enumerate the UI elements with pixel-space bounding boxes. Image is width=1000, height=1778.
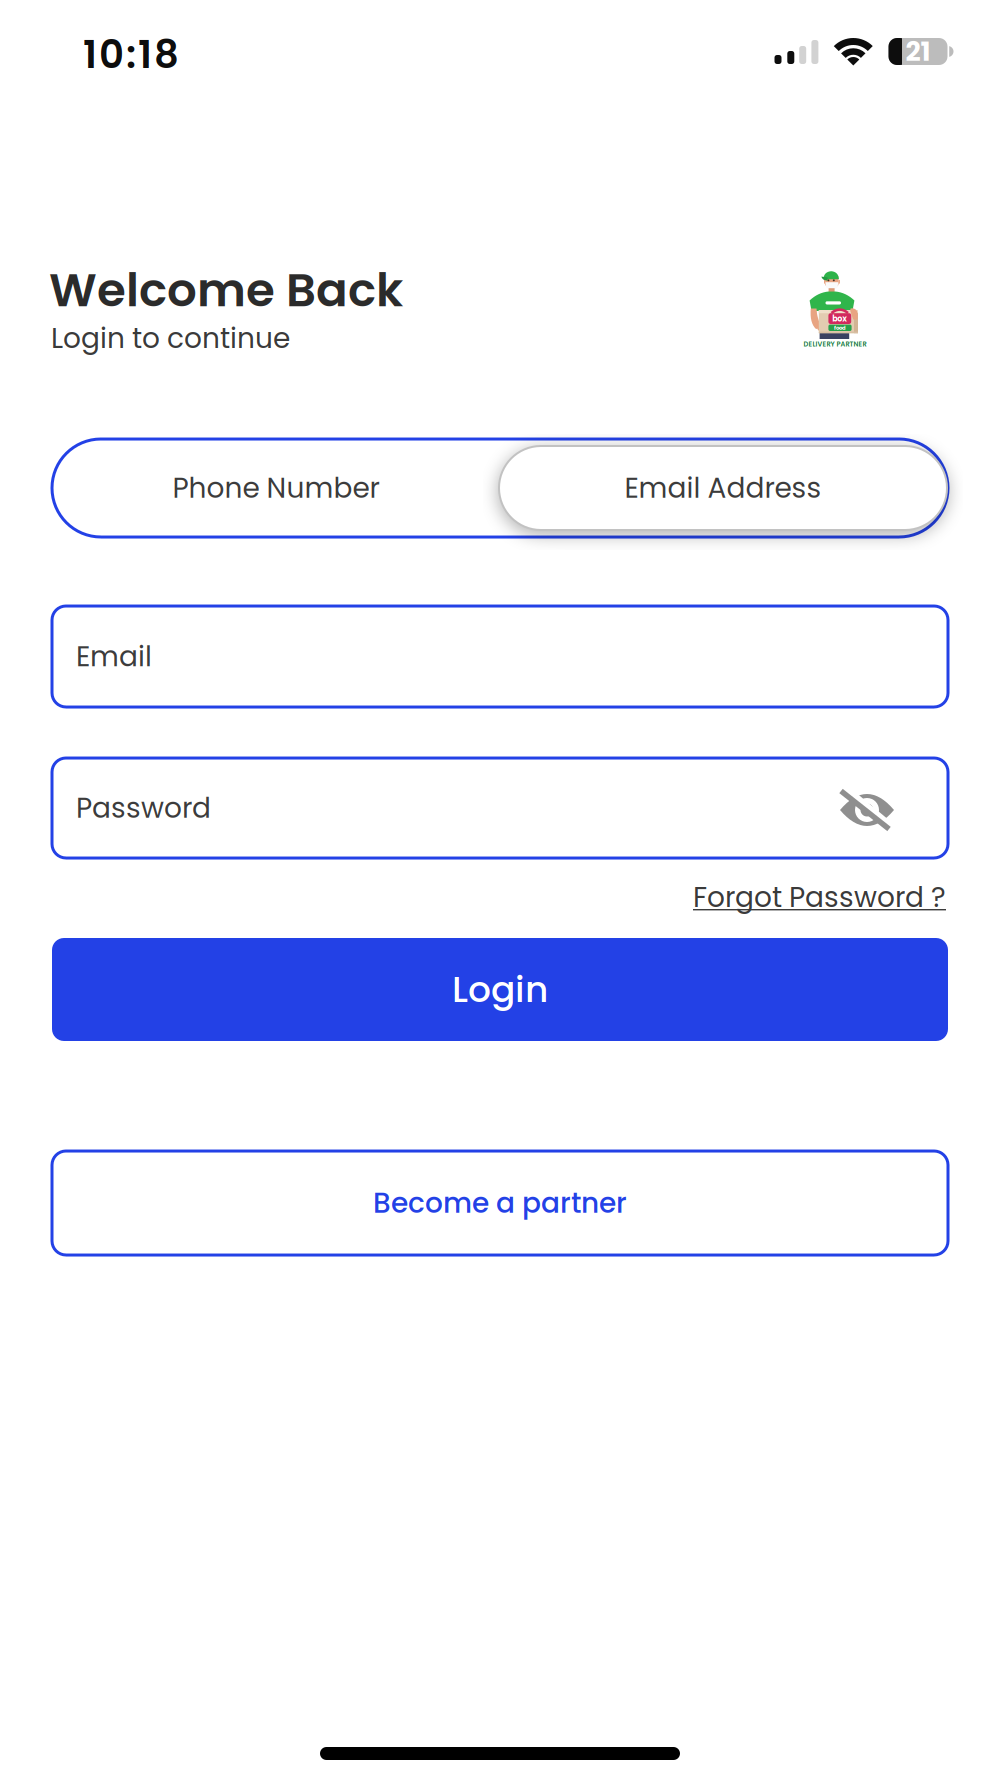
button[interactable]: Phone Number (52, 439, 500, 537)
staticText: Email (76, 637, 152, 676)
staticText: Login to continue (51, 319, 290, 357)
button[interactable]: Password (52, 758, 948, 858)
staticText: Password (76, 789, 211, 827)
staticText: Become a partner (373, 1184, 627, 1222)
staticText: DELIVERY PARTNER (803, 340, 866, 349)
staticText: Login (452, 965, 548, 1014)
button[interactable]: Email Address (499, 446, 947, 530)
staticText: 10:18 (83, 28, 179, 81)
button[interactable]: Login (52, 938, 948, 1041)
staticText: 21 (905, 33, 930, 70)
button[interactable]: Email (52, 606, 948, 707)
button[interactable]: Forgot Password ? (526, 878, 946, 916)
staticText: box (832, 313, 847, 324)
staticText: Forgot Password ? (693, 878, 946, 916)
button[interactable]: Show password (839, 787, 895, 833)
button[interactable]: Become a partner (52, 1151, 948, 1255)
staticText: Welcome Back (49, 258, 403, 322)
staticText: Email Address (624, 469, 821, 507)
staticText: Phone Number (172, 469, 379, 507)
staticText: food (834, 324, 846, 331)
